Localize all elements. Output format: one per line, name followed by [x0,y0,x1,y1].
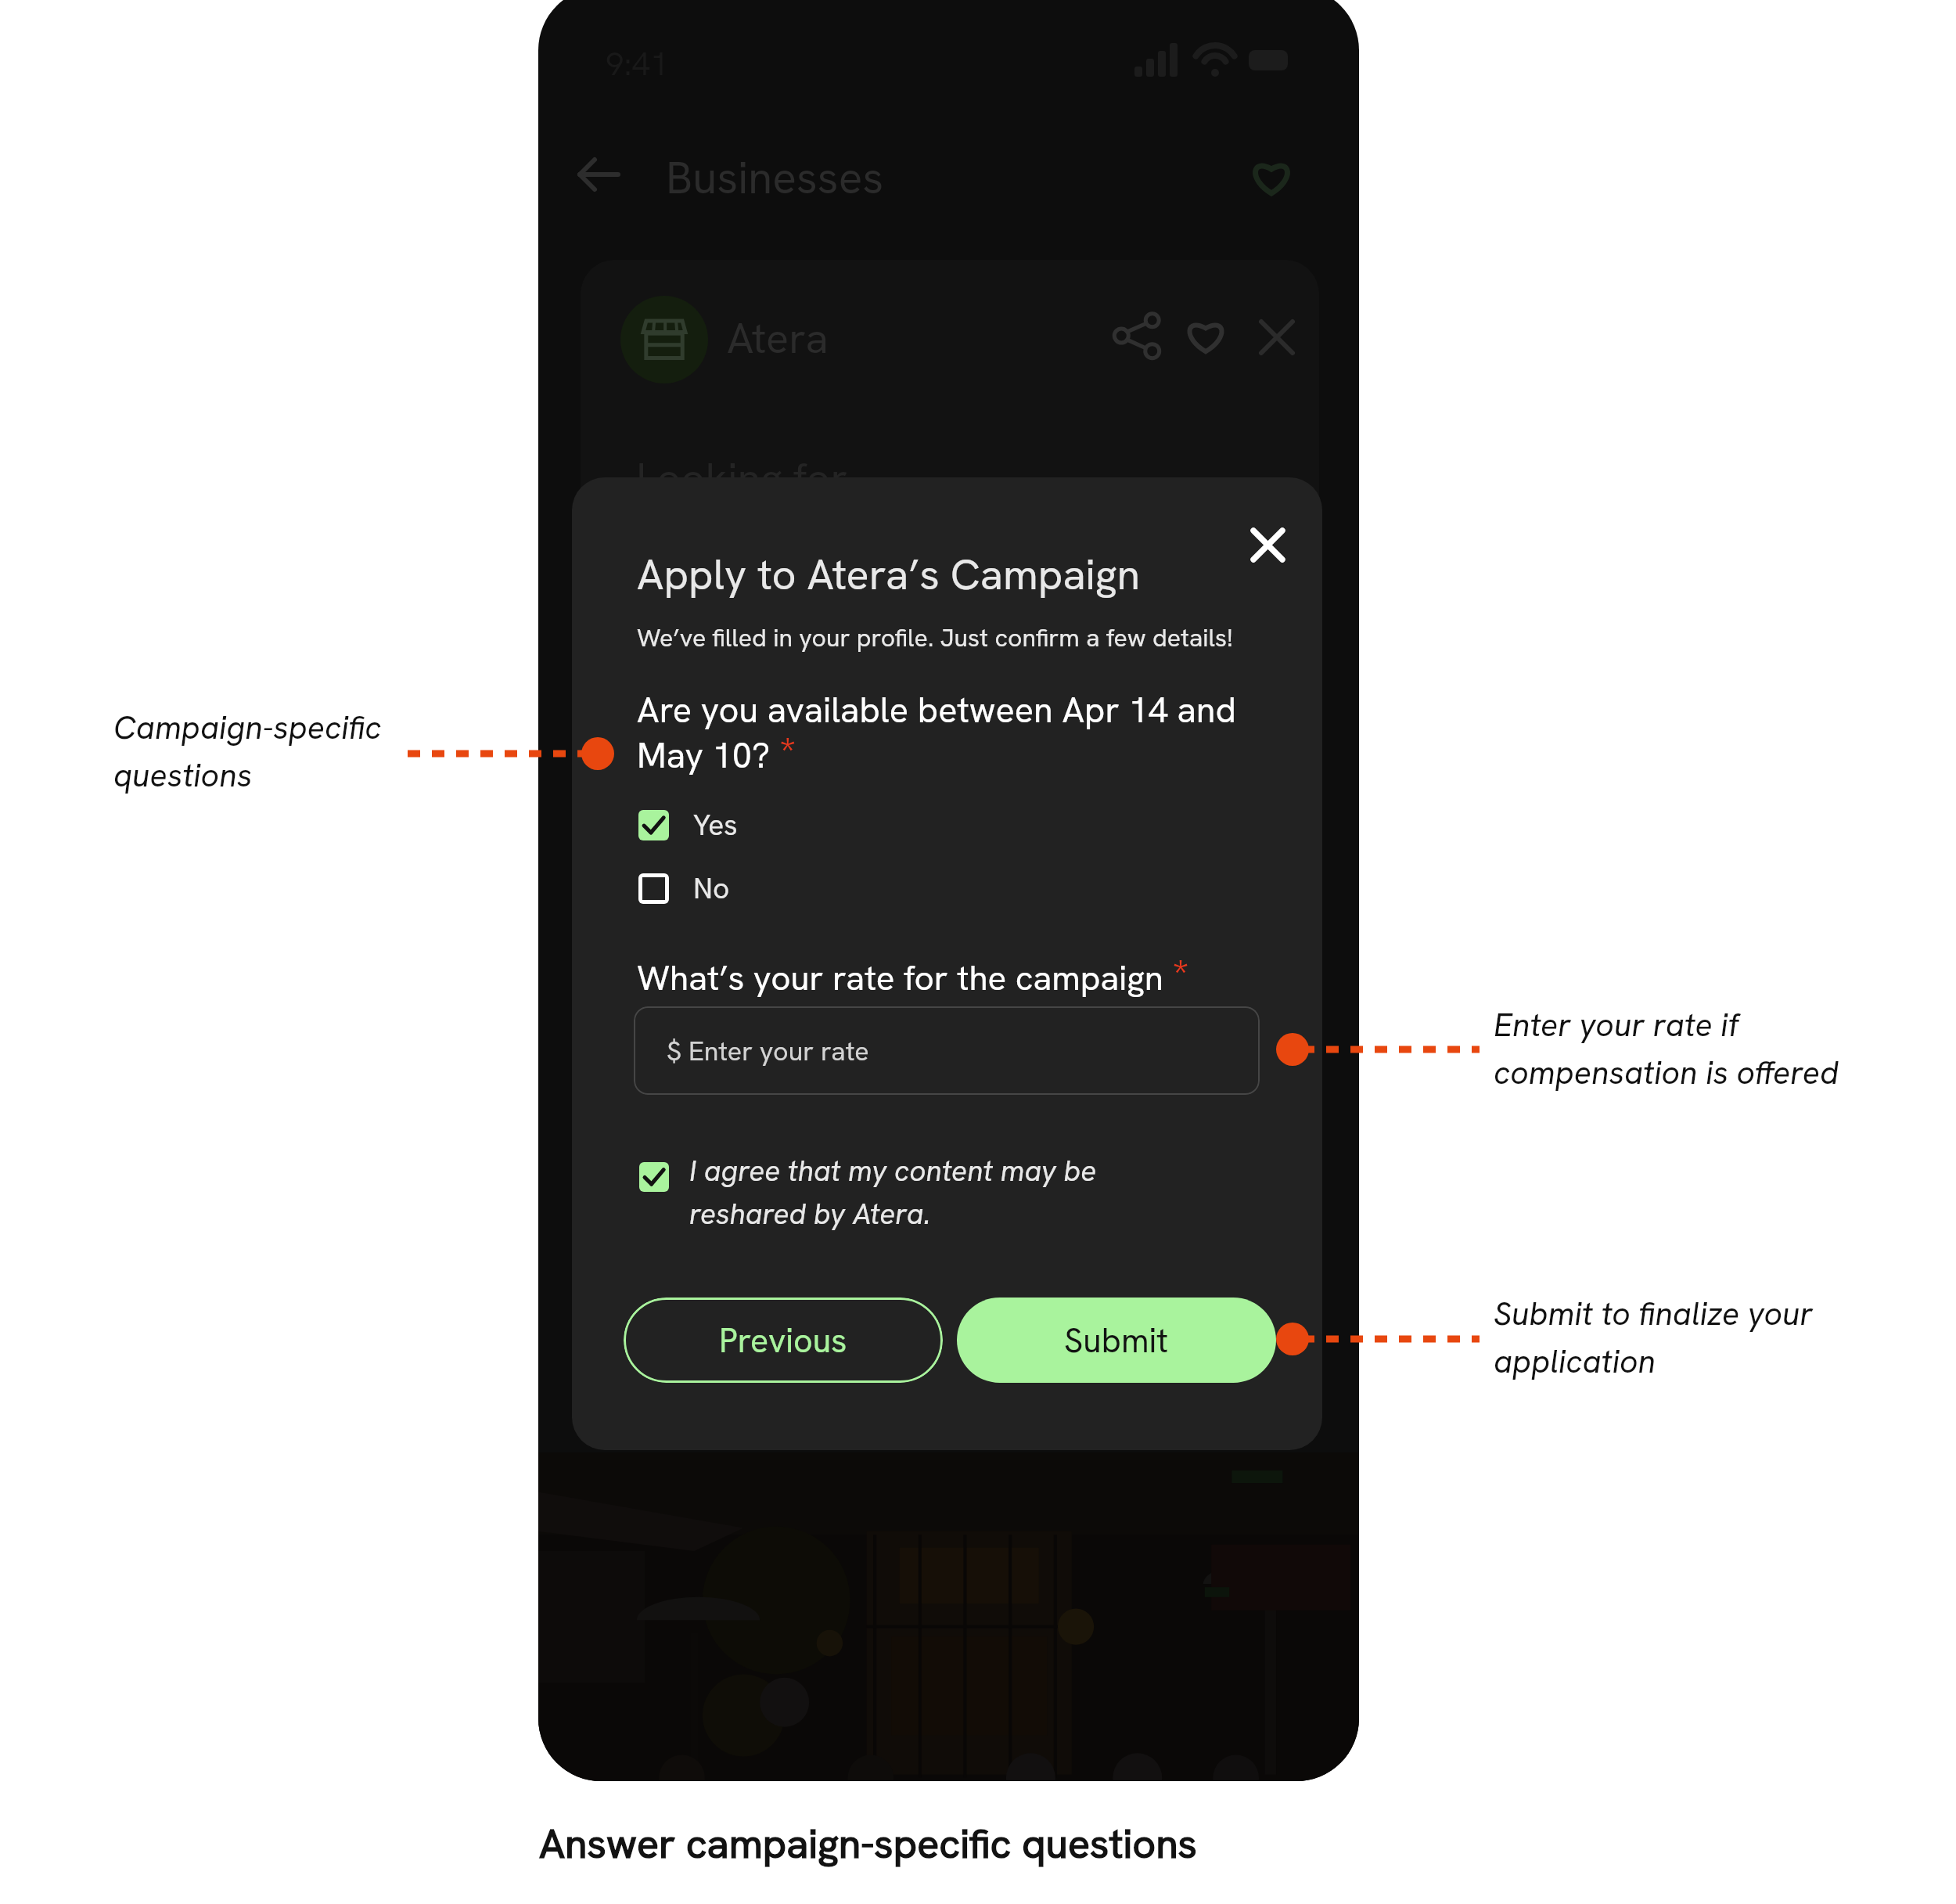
staticText: Enter your rate if compensation is offer… [1494,1004,1839,1093]
button[interactable]: Back [576,154,620,195]
staticText: Campaign-specific questions [113,707,382,796]
staticText: I agree that my content may be reshared … [689,1152,1097,1233]
staticText: Businesses [666,149,884,207]
staticText: Previous [719,1319,847,1362]
staticText: $ Enter your rate [667,1034,869,1068]
button[interactable]: Submit [957,1298,1276,1383]
button[interactable]: Dismiss business [1260,320,1294,355]
staticText: What’s your rate for the campaign * [637,948,1189,1002]
staticText: Answer campaign-specific questions [539,1817,1198,1870]
staticText: Looking for... [636,451,874,506]
button[interactable]: Close [1236,513,1299,576]
staticText: Apply to Atera’s Campaign [637,547,1141,602]
button[interactable]: $ Enter your rate [634,1006,1260,1095]
button[interactable]: Previous [624,1298,943,1383]
button[interactable]: Yes [638,806,738,844]
staticText: 9:41 [606,42,669,85]
button[interactable]: Favorites [1247,154,1296,200]
staticText: Are you available between Apr 14 and May… [637,687,1236,780]
staticText: Submit to finalize your application [1494,1293,1814,1382]
staticText: No [693,869,730,907]
staticText: Yes [693,806,738,844]
staticText: We’ve filled in your profile. Just confi… [637,621,1233,654]
button[interactable]: No [638,869,730,907]
button[interactable]: Share [1114,313,1160,358]
button[interactable]: Save business [1181,314,1230,358]
staticText: Submit [1064,1319,1169,1362]
staticText: Atera [727,311,829,365]
button[interactable]: I agree that my content may be reshared … [639,1152,1124,1233]
